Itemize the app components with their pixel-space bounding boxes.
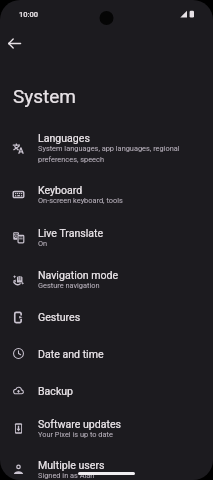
staticText: Gestures [38, 311, 81, 323]
staticText: Your Pixel is up to date [38, 430, 113, 439]
staticText: Date and time [38, 348, 104, 360]
staticText: Multiple users [38, 459, 105, 471]
staticText: On [38, 239, 48, 248]
staticText: Keyboard [38, 184, 83, 196]
staticText: System languages, app languages, regiona… [38, 144, 203, 164]
button[interactable]: Backup [0, 372, 213, 409]
button[interactable]: Live Translate [0, 216, 213, 259]
button[interactable]: Back [2, 31, 26, 55]
button[interactable]: Navigation mode [0, 259, 213, 299]
button[interactable]: Gestures [0, 299, 213, 335]
button[interactable]: Keyboard [0, 173, 213, 216]
staticText: Navigation mode [38, 269, 119, 281]
button[interactable]: Software updates [0, 409, 213, 448]
button[interactable]: Languages [0, 123, 213, 173]
staticText: Backup [38, 385, 74, 397]
staticText: Gesture navigation [38, 281, 100, 290]
staticText: Software updates [38, 418, 122, 430]
staticText: On-screen keyboard, tools [38, 196, 123, 205]
button[interactable]: Multiple users [0, 448, 213, 480]
staticText: Signed in as Alan [38, 471, 95, 480]
staticText: Languages [38, 132, 90, 144]
staticText: Live Translate [38, 227, 104, 239]
button[interactable]: Date and time [0, 335, 213, 372]
staticText: 10:00 [19, 10, 39, 19]
staticText: System [13, 85, 77, 107]
